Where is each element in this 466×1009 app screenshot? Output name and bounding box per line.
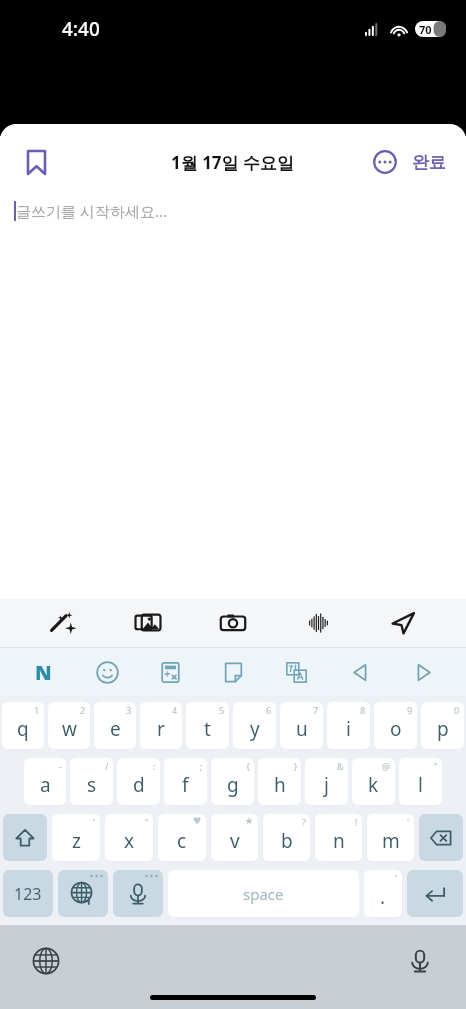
button[interactable]: 6 [233,702,276,749]
staticText: l [418,772,423,798]
staticText: ★ [245,816,254,826]
staticText: - [59,760,62,772]
staticText: 완료 [412,152,446,173]
button[interactable]: " [399,758,442,805]
button[interactable]: ! [315,814,362,861]
staticText: o [390,716,402,742]
button[interactable]: ; [164,758,207,805]
staticText: t [204,716,211,742]
button[interactable]: Photos [126,601,170,645]
staticText: space [243,884,284,904]
staticText: 4:40 [62,16,100,42]
staticText: / [105,760,109,772]
button[interactable]: 9 [374,702,417,749]
staticText: 9 [407,704,413,716]
staticText: 6 [266,704,272,716]
button[interactable]: ' [367,814,414,861]
staticText: z [72,828,81,854]
button[interactable]: Magic [41,601,85,645]
staticText: x [124,828,135,854]
staticText: @ [382,760,391,772]
staticText: 123 [14,883,42,905]
staticText: y [250,716,260,742]
staticText: ! [355,816,358,828]
button[interactable]: ( [211,758,254,805]
staticText: s [87,772,97,798]
button[interactable]: Bookmark [14,140,58,184]
button[interactable]: ♥ [158,814,206,861]
button[interactable]: Clipboard [213,652,253,692]
button[interactable]: ' [364,870,402,917]
staticText: " [434,760,438,772]
staticText: f [182,772,189,798]
staticText: n [333,828,345,854]
staticText: u [296,716,308,742]
staticText: . [380,884,386,910]
staticText: ) [294,760,297,772]
button[interactable]: / [70,758,113,805]
button[interactable]: Voice input [113,870,163,917]
staticText: 5 [219,704,225,716]
button[interactable]: @ [352,758,395,805]
button[interactable]: 7 [280,702,323,749]
button[interactable]: ' [52,814,100,861]
button[interactable]: Next [403,652,443,692]
button[interactable]: 0 [421,702,464,749]
button[interactable]: 5 [186,702,229,749]
button[interactable]: space [168,870,359,917]
button[interactable]: " [105,814,153,861]
button[interactable]: Voice input [398,939,442,983]
button[interactable]: Calculator [150,652,190,692]
staticText: ♥ [193,816,202,826]
staticText: h [274,772,286,798]
staticText: w [62,716,77,742]
button[interactable]: Emoji [87,652,127,692]
button[interactable]: Previous [340,652,380,692]
staticText: e [110,716,121,742]
button[interactable]: 완료 [408,146,450,179]
staticText: ( [247,760,250,772]
staticText: ? [302,816,306,828]
button[interactable]: Enter [407,870,463,917]
staticText: " [145,816,149,828]
button[interactable]: 2 [48,702,90,749]
button[interactable]: Backspace [419,814,463,861]
button[interactable]: 8 [327,702,370,749]
staticText: p [437,716,449,742]
button[interactable]: Voice [296,601,340,645]
staticText: v [230,828,240,854]
staticText: i [346,716,351,742]
button[interactable]: Language [24,939,68,983]
button[interactable]: ★ [211,814,258,861]
button[interactable]: ? [263,814,310,861]
staticText: ; [200,760,203,772]
staticText: 1 [34,704,40,716]
button[interactable]: Translate [276,652,316,692]
button[interactable]: Camera [211,601,255,645]
button[interactable]: - [24,758,66,805]
button[interactable]: N [23,652,63,692]
staticText: 4 [172,704,178,716]
button[interactable]: ) [258,758,301,805]
button[interactable]: More options [366,143,404,181]
staticText: c [177,828,187,854]
button[interactable]: : [117,758,160,805]
button[interactable]: Send [381,601,425,645]
button[interactable]: 3 [94,702,136,749]
button[interactable]: 123 [3,870,53,917]
staticText: : [153,760,156,772]
button[interactable]: 4 [140,702,182,749]
staticText: 8 [360,704,366,716]
button[interactable]: Shift [3,814,47,861]
staticText: 0 [454,704,460,716]
button[interactable]: Language [58,870,108,917]
staticText: ' [395,872,398,884]
staticText: 2 [80,704,86,716]
staticText: 1월 17일 수요일 [171,151,295,174]
staticText: 3 [126,704,132,716]
staticText: j [324,772,329,798]
button[interactable]: & [305,758,348,805]
button[interactable]: 1 [2,702,44,749]
staticText: & [337,760,344,772]
staticText: a [40,772,51,798]
